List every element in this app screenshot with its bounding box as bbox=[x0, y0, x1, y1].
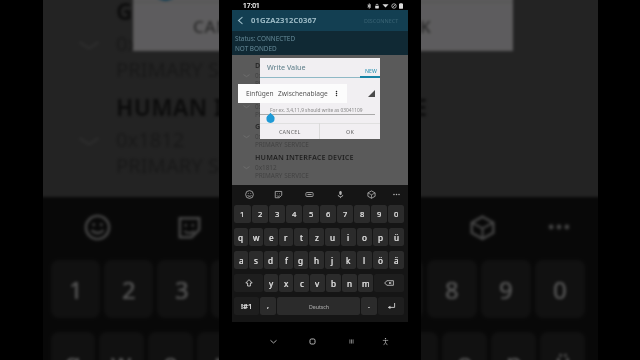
button[interactable]: DEVICE INFORMATION bbox=[232, 60, 408, 90]
button[interactable]: CANCEL bbox=[260, 123, 319, 139]
button[interactable]: 8 bbox=[354, 205, 370, 223]
button[interactable]: 2 bbox=[104, 260, 153, 318]
button[interactable]: Zwischenablage bbox=[276, 84, 330, 103]
button[interactable]: GENERIC ACCESS bbox=[232, 121, 408, 151]
button[interactable]: i bbox=[393, 332, 438, 360]
button[interactable]: Emoji bbox=[241, 186, 257, 203]
button[interactable]: More options bbox=[331, 84, 342, 103]
button[interactable]: a bbox=[234, 251, 248, 269]
button[interactable]: q bbox=[234, 228, 248, 246]
button[interactable]: 3 bbox=[269, 205, 285, 223]
button[interactable]: Stickers bbox=[270, 186, 286, 203]
button[interactable]: Recent apps bbox=[332, 322, 371, 360]
button[interactable]: 4 bbox=[286, 205, 302, 223]
button[interactable]: Keyboard settings bbox=[457, 200, 507, 254]
button[interactable]: ü bbox=[540, 332, 585, 360]
button[interactable]: GIF keyboard bbox=[262, 200, 312, 254]
button[interactable]: Einfügen bbox=[244, 84, 276, 103]
button[interactable]: Enter bbox=[378, 297, 404, 315]
button[interactable]: j bbox=[325, 251, 340, 269]
button[interactable]: 1 bbox=[51, 260, 100, 318]
button[interactable]: o bbox=[357, 228, 372, 246]
button[interactable]: 6 bbox=[319, 260, 369, 318]
button[interactable]: o bbox=[442, 332, 487, 360]
button[interactable]: OK bbox=[324, 1, 513, 51]
button[interactable]: 1 bbox=[234, 205, 251, 223]
button[interactable]: b bbox=[326, 274, 341, 292]
button[interactable]: u bbox=[344, 332, 389, 360]
button[interactable]: Accessibility bbox=[371, 322, 400, 360]
button[interactable]: Keyboard settings bbox=[363, 186, 379, 203]
button[interactable]: w bbox=[249, 228, 263, 246]
button[interactable]: 0 bbox=[535, 260, 585, 318]
button[interactable]: v bbox=[310, 274, 325, 292]
button[interactable]: r bbox=[279, 228, 293, 246]
button[interactable]: DISCONNECT bbox=[361, 14, 402, 27]
button[interactable]: 4 bbox=[211, 260, 261, 318]
button[interactable]: HUMAN INTERFACE DEVICE bbox=[43, 92, 598, 187]
button[interactable]: OK bbox=[320, 123, 380, 139]
button[interactable]: w bbox=[99, 332, 144, 360]
button[interactable]: k bbox=[341, 251, 356, 269]
button[interactable]: More options bbox=[388, 186, 404, 203]
button[interactable]: CANCEL bbox=[133, 1, 322, 51]
button[interactable]: HUMAN INTERFACE DEVICE bbox=[232, 152, 408, 182]
staticText: 0x1812 bbox=[255, 163, 277, 172]
button[interactable]: t bbox=[294, 228, 308, 246]
button[interactable]: 9 bbox=[481, 260, 531, 318]
button[interactable]: ö bbox=[373, 251, 388, 269]
button[interactable]: i bbox=[341, 228, 356, 246]
button[interactable]: 9 bbox=[371, 205, 387, 223]
staticText: Einfügen bbox=[246, 89, 274, 98]
button[interactable]: 3 bbox=[157, 260, 207, 318]
button[interactable]: r bbox=[197, 332, 242, 360]
button[interactable]: Shift bbox=[234, 274, 263, 292]
button[interactable]: More options bbox=[534, 200, 584, 254]
button[interactable]: Backspace bbox=[374, 274, 404, 292]
button[interactable]: 8 bbox=[427, 260, 477, 318]
button[interactable]: m bbox=[358, 274, 373, 292]
button[interactable]: l bbox=[357, 251, 372, 269]
button[interactable]: 7 bbox=[373, 260, 423, 318]
button[interactable]: Navigate up bbox=[234, 14, 247, 27]
button[interactable]: Back bbox=[254, 322, 293, 360]
button[interactable]: e bbox=[148, 332, 193, 360]
button[interactable]: Voice input bbox=[332, 186, 348, 203]
button[interactable]: 6 bbox=[320, 205, 336, 223]
button[interactable]: Home bbox=[293, 322, 332, 360]
button[interactable]: Stickers bbox=[164, 200, 214, 254]
button[interactable]: z bbox=[295, 332, 340, 360]
button[interactable]: 2 bbox=[252, 205, 268, 223]
button[interactable]: h bbox=[309, 251, 324, 269]
button[interactable]: x bbox=[279, 274, 293, 292]
button[interactable]: ä bbox=[389, 251, 404, 269]
button[interactable]: 7 bbox=[337, 205, 353, 223]
button[interactable]: d bbox=[264, 251, 278, 269]
button[interactable]: GENERIC ATTRIBUTE bbox=[232, 91, 408, 121]
button[interactable]: !#1 bbox=[234, 297, 259, 315]
button[interactable]: e bbox=[264, 228, 278, 246]
button[interactable]: f bbox=[279, 251, 293, 269]
button[interactable]: g bbox=[294, 251, 308, 269]
button[interactable]: , bbox=[260, 297, 276, 315]
button[interactable]: p bbox=[491, 332, 536, 360]
button[interactable]: 5 bbox=[265, 260, 315, 318]
button[interactable]: 0 bbox=[388, 205, 404, 223]
button[interactable]: ü bbox=[389, 228, 404, 246]
button[interactable]: GENERIC ACCESS bbox=[43, 0, 598, 91]
button[interactable]: t bbox=[246, 332, 291, 360]
button[interactable]: n bbox=[342, 274, 357, 292]
button[interactable]: s bbox=[249, 251, 263, 269]
button[interactable]: c bbox=[294, 274, 309, 292]
button[interactable]: z bbox=[309, 228, 324, 246]
button[interactable]: GIF keyboard bbox=[301, 186, 317, 203]
button[interactable]: y bbox=[264, 274, 278, 292]
button[interactable]: u bbox=[325, 228, 340, 246]
button[interactable]: . bbox=[361, 297, 377, 315]
button[interactable]: Deutsch bbox=[277, 297, 360, 315]
button[interactable]: 5 bbox=[303, 205, 319, 223]
button[interactable]: q bbox=[51, 332, 95, 360]
button[interactable]: Emoji bbox=[72, 200, 122, 254]
button[interactable]: p bbox=[373, 228, 388, 246]
button[interactable]: Voice input bbox=[358, 200, 408, 254]
